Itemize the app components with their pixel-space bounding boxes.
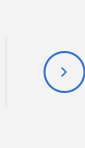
button[interactable]: Next (43, 51, 85, 93)
